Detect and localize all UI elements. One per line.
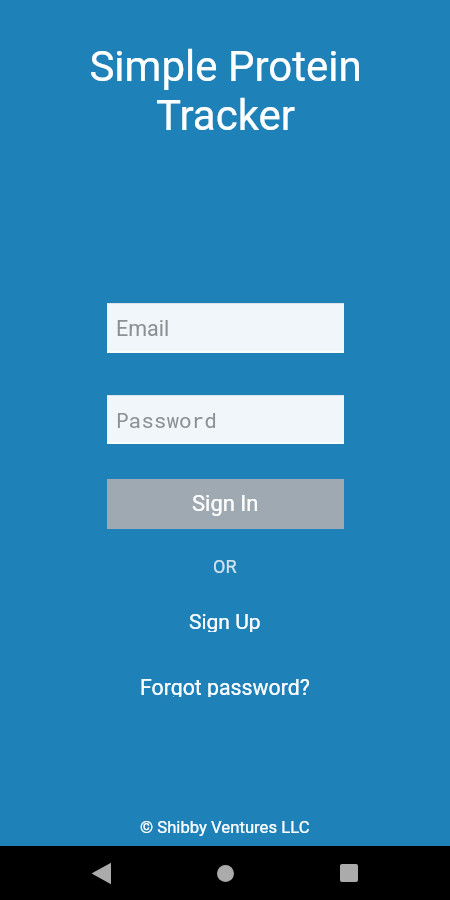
button[interactable]: Sign In [107, 479, 344, 529]
button[interactable]: Forgot password? [128, 669, 322, 703]
button[interactable]: Email [107, 303, 344, 353]
staticText: Forgot password? [140, 675, 310, 697]
staticText: Simple Protein Tracker [89, 42, 362, 140]
staticText: Sign In [192, 491, 259, 517]
staticText: © Shibby Ventures LLC [140, 818, 310, 838]
staticText: Email [116, 316, 170, 341]
button[interactable]: Password [107, 395, 344, 444]
button[interactable]: Home [150, 846, 300, 900]
button[interactable]: Sign Up [177, 604, 273, 638]
staticText: Password [116, 406, 217, 434]
staticText: OR [213, 556, 237, 577]
button[interactable]: Recent apps [300, 846, 450, 900]
staticText: Sign Up [189, 610, 261, 632]
button[interactable]: Back [0, 846, 150, 900]
